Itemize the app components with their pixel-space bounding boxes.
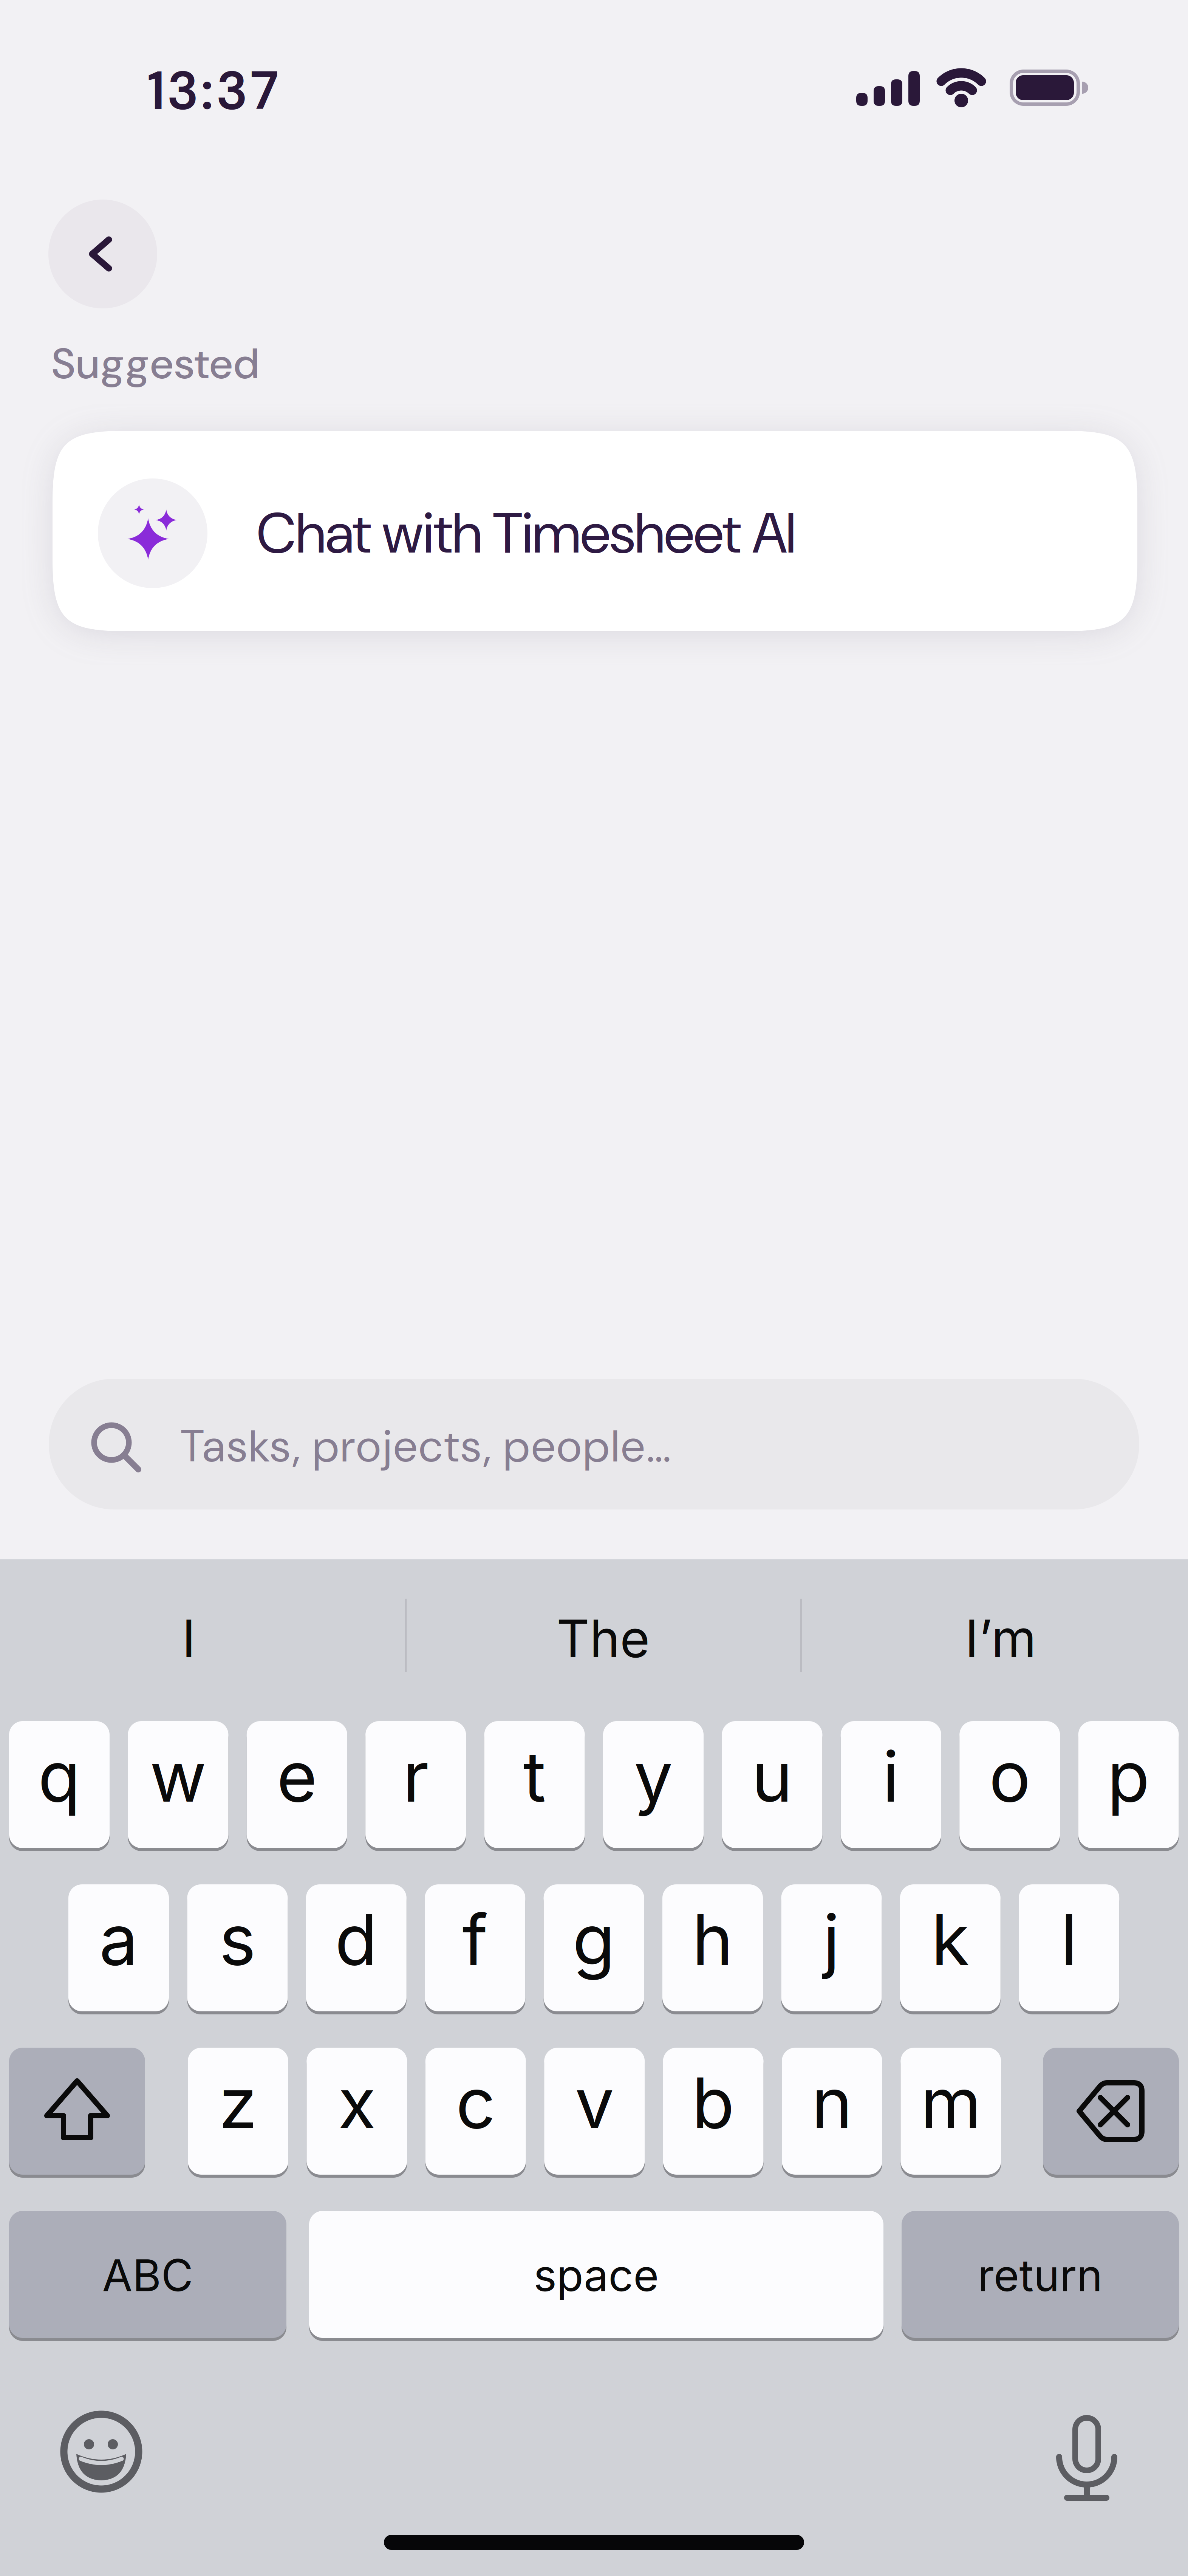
button[interactable]: j [781,1883,882,2013]
staticText: j [823,1897,840,1982]
button[interactable]: s [187,1883,288,2013]
button[interactable]: p [1078,1720,1179,1850]
staticText: i [882,1734,899,1818]
button[interactable]: I [0,1582,378,1695]
staticText: a [99,1897,138,1982]
staticText: 13:37 [148,56,278,125]
button[interactable]: n [782,2046,882,2176]
staticText: p [1107,1734,1150,1818]
button[interactable]: return [902,2209,1179,2339]
staticText: Chat with Timesheet AI [257,497,796,570]
button[interactable]: I’m [812,1582,1188,1695]
button[interactable]: v [544,2046,645,2176]
staticText: l [1061,1897,1078,1982]
staticText: t [523,1734,546,1818]
staticText: g [572,1897,615,1982]
staticText: x [338,2061,376,2145]
staticText: c [456,2061,495,2145]
button[interactable]: u [722,1720,822,1850]
button[interactable]: y [603,1720,704,1850]
button[interactable]: m [901,2046,1001,2176]
staticText: space [534,2249,659,2302]
button[interactable]: Emoji [56,2406,147,2497]
button[interactable]: Back [48,200,157,308]
staticText: o [989,1734,1031,1818]
staticText: b [692,2061,735,2145]
button[interactable]: l [1019,1883,1119,2013]
button[interactable]: b [663,2046,764,2176]
staticText: u [752,1734,793,1818]
button[interactable]: d [306,1883,407,2013]
button[interactable]: a [68,1883,169,2013]
staticText: k [931,1897,969,1982]
staticText: m [920,2061,981,2145]
staticText: ABC [102,2249,193,2302]
button[interactable]: Dictation [1041,2410,1132,2501]
staticText: I’m [965,1607,1036,1669]
button[interactable]: t [484,1720,585,1850]
button[interactable]: The [414,1582,792,1695]
button[interactable]: e [247,1720,347,1850]
staticText: r [403,1734,429,1818]
staticText: The [556,1607,650,1669]
button[interactable]: z [188,2046,288,2176]
staticText: Tasks, projects, people… [181,1417,671,1475]
button[interactable]: f [425,1883,525,2013]
staticText: z [219,2061,257,2145]
staticText: w [150,1734,207,1818]
staticText: f [462,1897,488,1982]
staticText: n [811,2061,853,2145]
staticText: Suggested [52,336,259,391]
staticText: v [575,2061,614,2145]
button[interactable]: g [544,1883,644,2013]
staticText: e [277,1734,317,1818]
button[interactable]: space [309,2209,883,2339]
staticText: return [978,2249,1103,2302]
staticText: s [219,1897,256,1982]
button[interactable]: h [662,1883,763,2013]
button[interactable]: Search [49,1379,1139,1509]
button[interactable]: x [307,2046,407,2176]
staticText: I [182,1607,196,1669]
button[interactable]: Shift [9,2046,145,2176]
button[interactable]: w [128,1720,228,1850]
button[interactable]: r [365,1720,466,1850]
button[interactable]: c [425,2046,526,2176]
staticText: q [38,1734,81,1818]
staticText: d [335,1897,378,1982]
button[interactable]: o [959,1720,1060,1850]
button[interactable]: k [900,1883,1001,2013]
button[interactable]: Chat with Timesheet AI [53,431,1137,631]
button[interactable]: q [9,1720,110,1850]
button[interactable]: i [841,1720,941,1850]
staticText: h [692,1897,733,1982]
button[interactable]: ABC [9,2209,286,2339]
button[interactable]: Delete [1043,2046,1179,2176]
staticText: y [634,1734,673,1818]
